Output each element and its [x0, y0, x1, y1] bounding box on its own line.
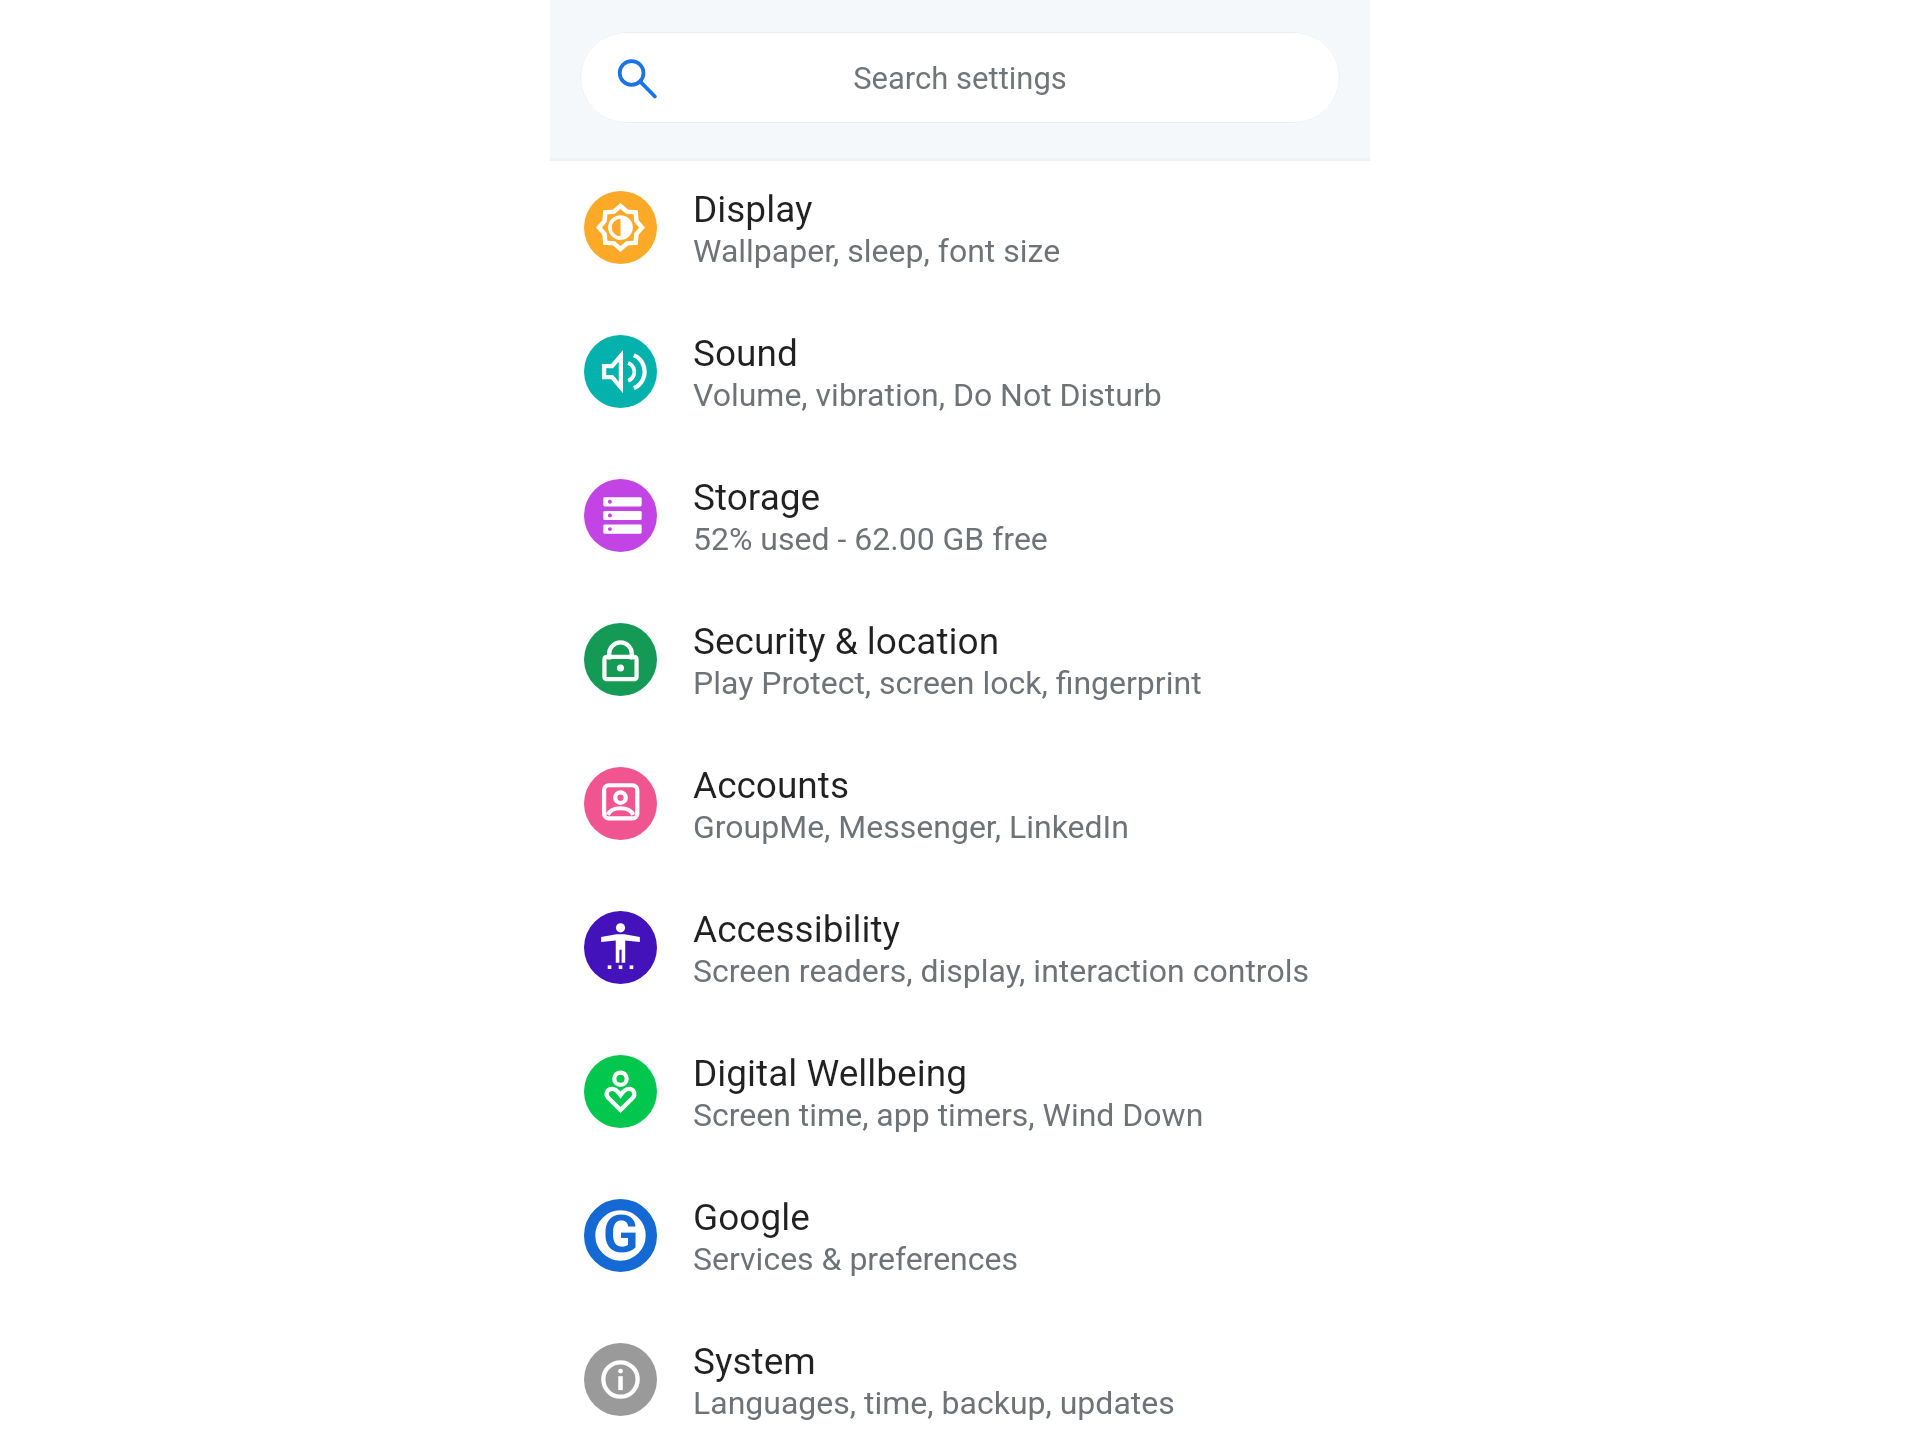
button[interactable]: Accessibility: [550, 875, 1370, 1019]
staticText: Screen time, app timers, Wind Down: [693, 1096, 1204, 1134]
staticText: Google: [693, 1196, 810, 1239]
staticText: Accessibility: [693, 908, 901, 951]
staticText: Wallpaper, sleep, font size: [693, 232, 1061, 270]
button[interactable]: System: [550, 1307, 1370, 1440]
staticText: Search settings: [658, 60, 1262, 96]
staticText: Services & preferences: [693, 1240, 1019, 1278]
button[interactable]: Sound: [550, 299, 1370, 443]
button[interactable]: G: [550, 1163, 1370, 1307]
staticText: System: [693, 1340, 816, 1383]
staticText: GroupMe, Messenger, LinkedIn: [693, 808, 1129, 846]
button[interactable]: Digital Wellbeing: [550, 1019, 1370, 1163]
staticText: G: [603, 1204, 639, 1265]
staticText: Sound: [693, 332, 798, 375]
staticText: Screen readers, display, interaction con…: [693, 952, 1309, 990]
staticText: Digital Wellbeing: [693, 1052, 967, 1095]
button[interactable]: Storage: [550, 443, 1370, 587]
staticText: Volume, vibration, Do Not Disturb: [693, 376, 1162, 414]
button[interactable]: Security & location: [550, 587, 1370, 731]
staticText: Display: [693, 188, 813, 231]
button[interactable]: Display: [550, 155, 1370, 299]
button[interactable]: Search: [580, 32, 1340, 123]
staticText: Accounts: [693, 764, 850, 807]
other: Search: [614, 56, 658, 100]
staticText: Languages, time, backup, updates: [693, 1384, 1175, 1422]
staticText: Security & location: [693, 620, 1000, 663]
button[interactable]: Accounts: [550, 731, 1370, 875]
staticText: Storage: [693, 476, 821, 519]
staticText: 52% used - 62.00 GB free: [693, 520, 1048, 558]
staticText: Play Protect, screen lock, fingerprint: [693, 664, 1202, 702]
